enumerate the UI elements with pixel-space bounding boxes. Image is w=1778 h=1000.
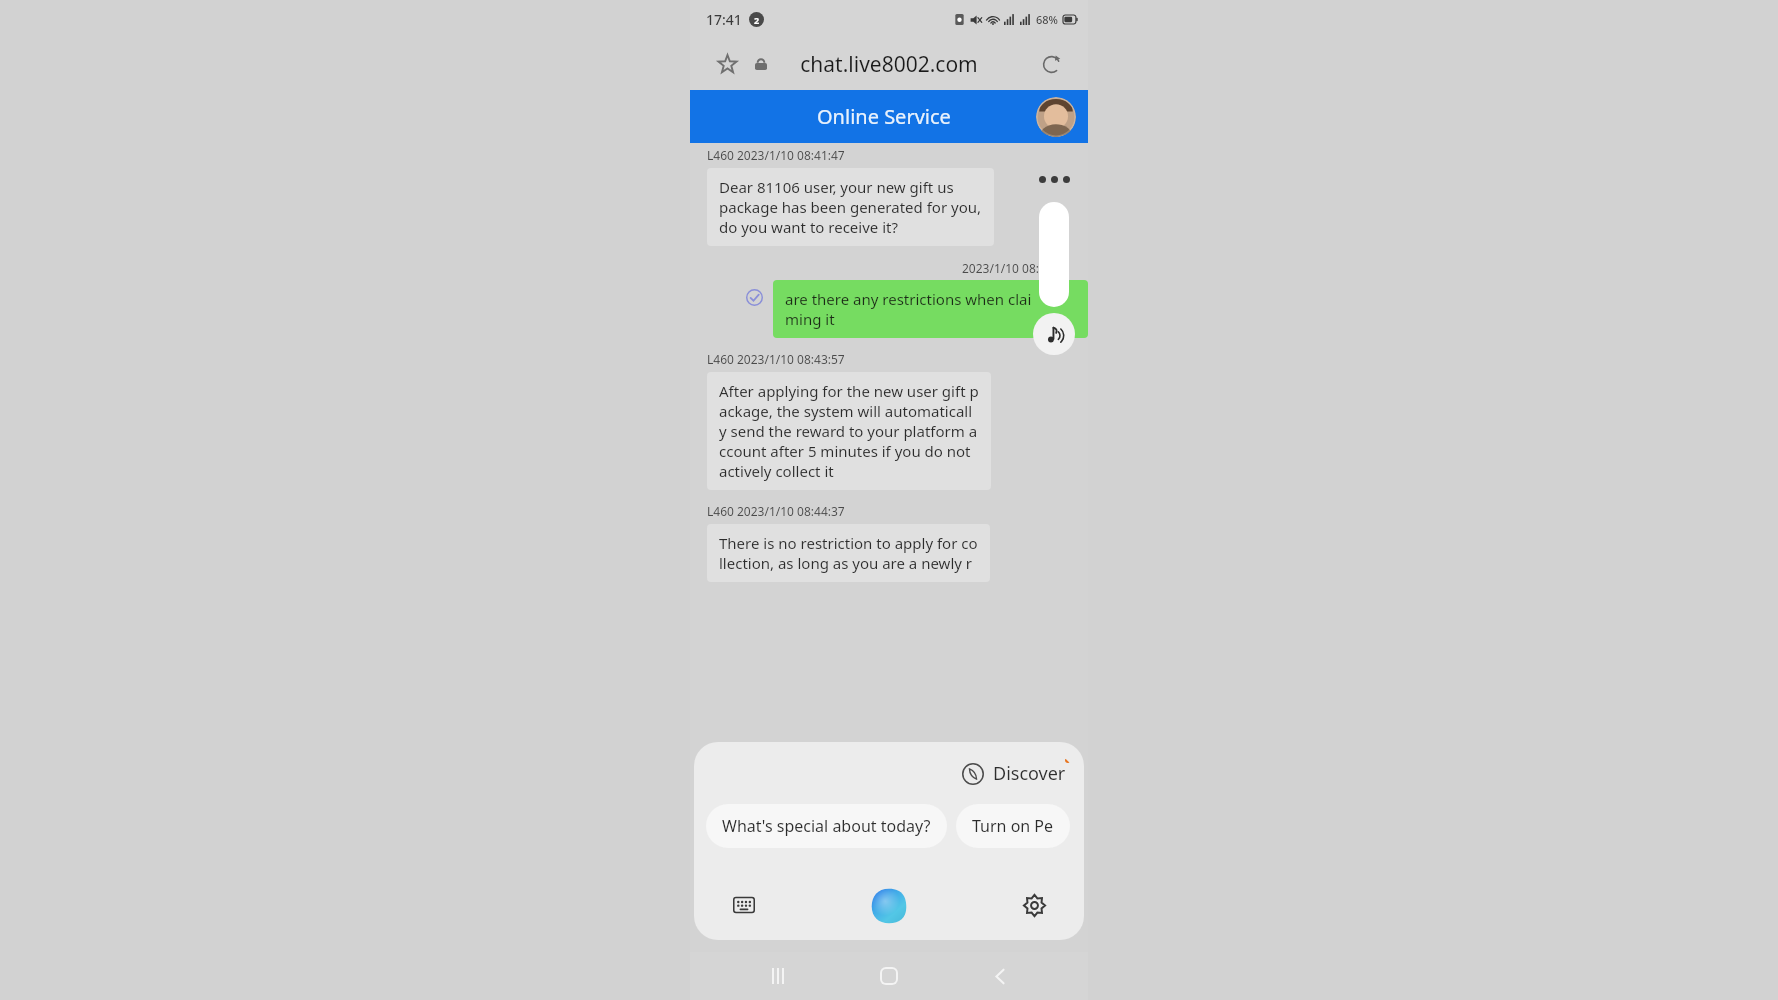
button[interactable]: Home: [866, 953, 912, 999]
staticText: 17:41: [706, 10, 742, 29]
button[interactable]: After applying for the new user gift p: [707, 372, 991, 490]
button[interactable]: Turn on Pe: [956, 804, 1070, 848]
button[interactable]: Back: [977, 953, 1023, 999]
staticText: There is no restriction to apply for co: [719, 533, 978, 553]
staticText: Discover: [993, 761, 1066, 786]
staticText: llection, as long as you are a newly r: [719, 553, 973, 573]
staticText: What's special about today?: [722, 815, 931, 837]
staticText: ccount after 5 minutes if you do not: [719, 441, 971, 461]
button[interactable]: Dear 81106 user, your new gift us: [707, 168, 994, 246]
button[interactable]: What's special about today?: [706, 804, 947, 848]
button[interactable]: Discover: [956, 757, 1072, 790]
staticText: y send the reward to your platform a: [719, 421, 978, 441]
staticText: do you want to receive it?: [719, 217, 898, 237]
button[interactable]: Agent avatar: [1036, 97, 1076, 137]
staticText: 68%: [1036, 12, 1058, 27]
button[interactable]: Keyboard: [722, 883, 766, 927]
staticText: ackage, the system will automaticall: [719, 401, 973, 421]
staticText: L460 2023/1/10 08:43:57: [707, 351, 845, 367]
staticText: 2: [754, 14, 760, 26]
staticText: After applying for the new user gift p: [719, 381, 979, 401]
button[interactable]: Assistant: [863, 879, 915, 931]
staticText: L460 2023/1/10 08:41:47: [707, 147, 845, 163]
button[interactable]: Recent apps: [755, 953, 801, 999]
staticText: Online Service: [817, 103, 951, 130]
button[interactable]: There is no restriction to apply for co: [707, 524, 990, 582]
button[interactable]: Bookmark: [712, 49, 742, 79]
button[interactable]: are there any restrictions when clai: [773, 280, 1088, 338]
staticText: chat.live8002.com: [800, 50, 978, 79]
button[interactable]: Reload: [1036, 49, 1066, 79]
button[interactable]: More options: [1032, 162, 1076, 196]
button[interactable]: Sound: [1033, 313, 1075, 355]
staticText: package has been generated for you,: [719, 197, 982, 217]
staticText: Turn on Pe: [972, 815, 1054, 837]
staticText: are there any restrictions when clai: [785, 289, 1032, 309]
button[interactable]: Settings: [1012, 883, 1056, 927]
staticText: ming it: [785, 309, 835, 329]
staticText: L460 2023/1/10 08:44:37: [707, 503, 845, 519]
staticText: Dear 81106 user, your new gift us: [719, 177, 954, 197]
staticText: 2023/1/10 08:42:13: [962, 260, 1070, 276]
staticText: actively collect it: [719, 461, 834, 481]
